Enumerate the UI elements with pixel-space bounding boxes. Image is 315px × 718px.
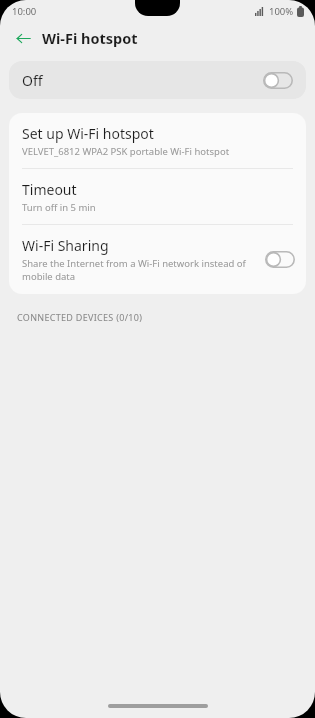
other: Toggle — [263, 72, 293, 89]
button[interactable]: Wi-Fi Sharing — [9, 225, 306, 294]
staticText: Turn off in 5 min — [22, 201, 96, 214]
staticText: Share the Internet from a Wi-Fi network … — [22, 257, 255, 283]
staticText: 100% — [269, 5, 294, 18]
staticText: CONNECTED DEVICES (0/10) — [17, 311, 143, 323]
staticText: Set up Wi-Fi hotspot — [22, 124, 154, 143]
other: Toggle — [265, 251, 295, 268]
staticText: Wi-Fi hotspot — [42, 28, 138, 48]
staticText: VELVET_6812 WPA2 PSK portable Wi-Fi hots… — [22, 145, 230, 158]
staticText: 10:00 — [12, 5, 37, 18]
staticText: Wi-Fi Sharing — [22, 236, 109, 255]
button[interactable]: Timeout — [9, 169, 306, 224]
staticText: Timeout — [22, 180, 77, 199]
staticText: Off — [22, 71, 43, 90]
button[interactable]: Off — [9, 61, 306, 99]
button[interactable]: Set up Wi-Fi hotspot — [9, 113, 306, 168]
button[interactable]: Back — [12, 27, 34, 49]
